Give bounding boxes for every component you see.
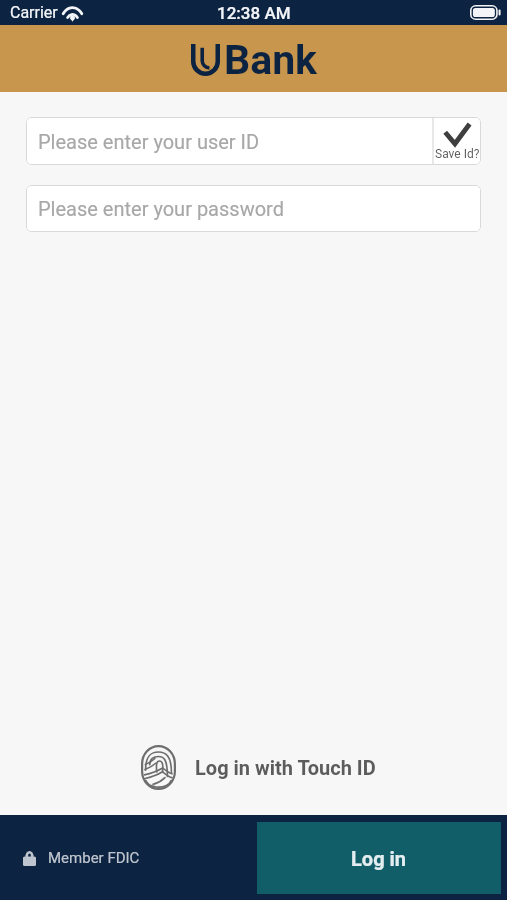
button[interactable]: Save Id — [433, 117, 481, 165]
staticText: Log in — [351, 847, 407, 870]
staticText: Please enter your password — [38, 197, 284, 220]
staticText: Log in with Touch ID — [195, 756, 376, 779]
staticText: Carrier — [10, 3, 58, 22]
staticText: Member FDIC — [48, 849, 140, 867]
button[interactable]: Please enter your password — [26, 185, 481, 232]
button[interactable]: Member FDIC — [23, 849, 140, 867]
staticText: 12:38 AM — [217, 3, 291, 23]
staticText: Bank — [224, 36, 318, 84]
staticText: Save Id? — [435, 147, 480, 161]
button[interactable]: Log in — [257, 822, 501, 894]
button[interactable]: Log in with Touch ID — [141, 745, 376, 790]
staticText: Please enter your user ID — [38, 130, 260, 153]
